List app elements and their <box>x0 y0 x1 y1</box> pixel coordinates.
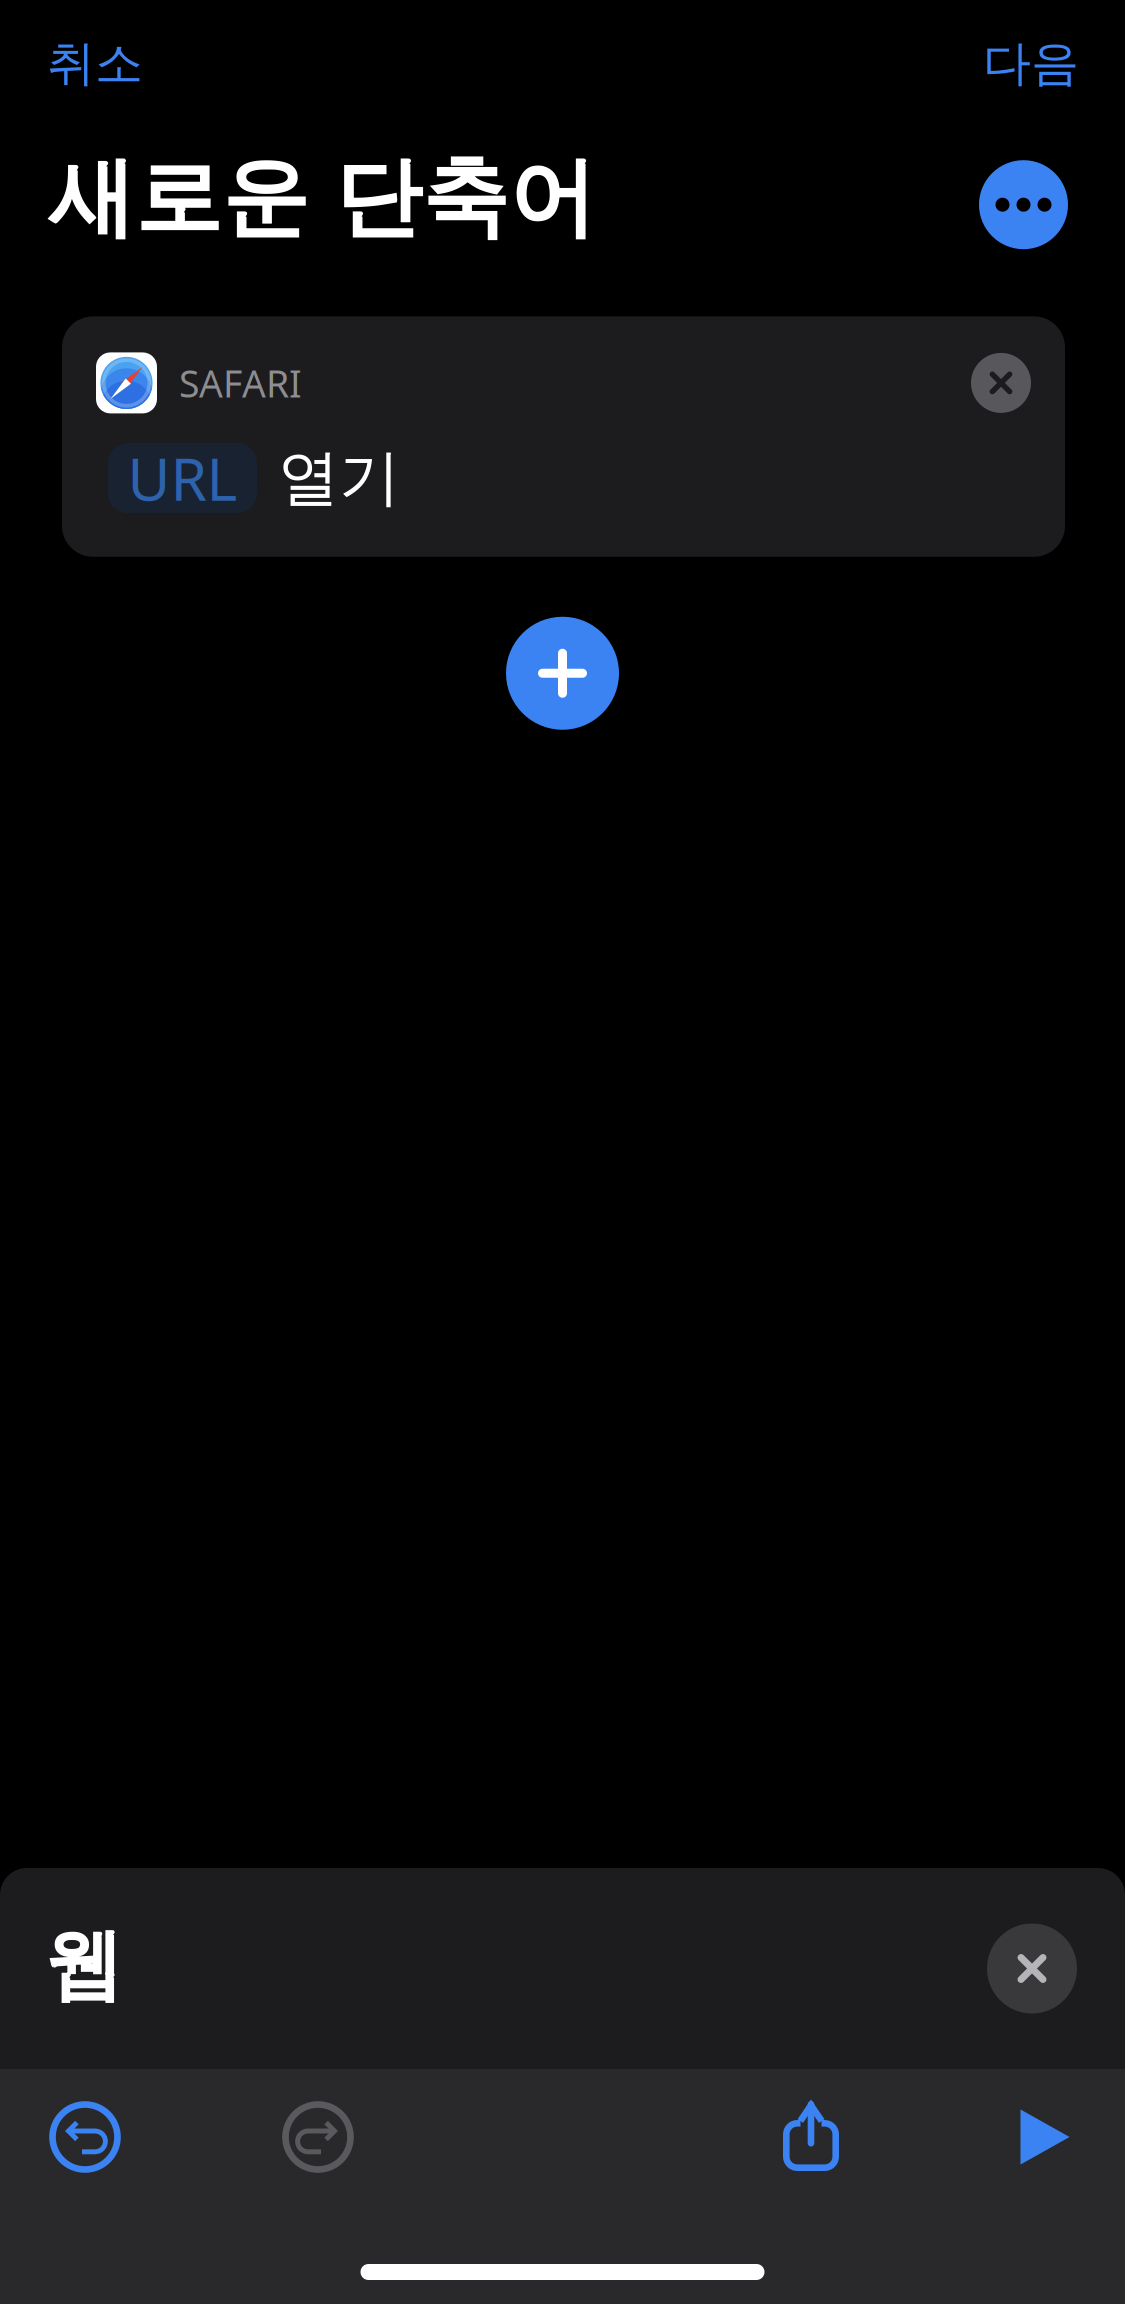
staticText: 열기 <box>278 440 400 516</box>
staticText: SAFARI <box>179 358 302 408</box>
button[interactable]: 취소 <box>0 0 177 112</box>
button[interactable]: Share <box>761 2086 861 2186</box>
button[interactable]: 다음 <box>949 0 1125 112</box>
button[interactable]: Redo <box>268 2087 368 2187</box>
button[interactable]: Undo <box>35 2087 135 2187</box>
staticText: 새로운 단축어 <box>48 145 596 251</box>
staticText: 웹 <box>45 1918 122 2013</box>
button[interactable]: More options <box>979 147 1125 249</box>
staticText: 다음 <box>983 34 1079 93</box>
button[interactable]: Run shortcut <box>995 2087 1095 2187</box>
button[interactable]: Close <box>987 1923 1125 2013</box>
button[interactable]: Remove action <box>971 353 1031 413</box>
staticText: 취소 <box>47 34 143 93</box>
button[interactable]: Add action <box>506 617 619 730</box>
staticText: URL <box>127 439 237 517</box>
